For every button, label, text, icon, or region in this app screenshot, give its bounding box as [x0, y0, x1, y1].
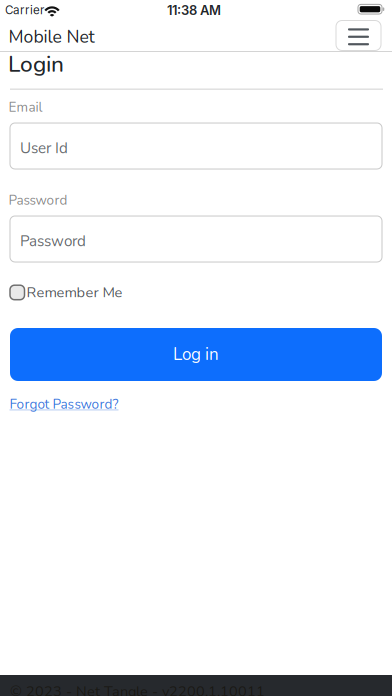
staticText: User Id	[20, 138, 68, 159]
staticText: Carrier	[5, 3, 44, 17]
staticText: Password	[20, 231, 86, 252]
button[interactable]: Password	[10, 216, 382, 262]
button[interactable]: Email — User Id	[10, 123, 382, 169]
button[interactable]: Forgot Password?	[9, 395, 118, 413]
staticText: Forgot Password?	[9, 395, 118, 413]
staticText: 11:38 AM	[167, 2, 221, 18]
staticText: Email	[8, 98, 42, 116]
staticText: Mobile Net	[8, 25, 94, 49]
button[interactable]: Remember Me	[10, 282, 122, 302]
button[interactable]: Log in	[10, 328, 382, 381]
staticText: Password	[8, 191, 67, 209]
staticText: Remember Me	[26, 282, 122, 302]
staticText: Log in	[173, 343, 219, 366]
staticText: © 2023 - Net Tangle - v2200.1.10011	[10, 681, 265, 696]
button[interactable]: Menu	[336, 20, 381, 50]
staticText: Login	[8, 49, 64, 80]
